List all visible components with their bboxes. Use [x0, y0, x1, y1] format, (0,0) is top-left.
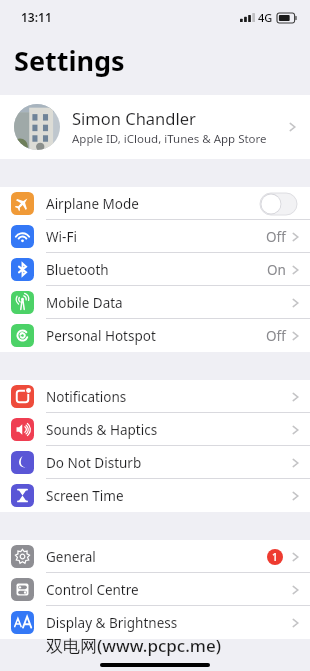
- staticText: Sounds & Haptics: [46, 421, 292, 439]
- staticText: Personal Hotspot: [46, 327, 266, 345]
- staticText: Screen Time: [46, 487, 292, 505]
- staticText: Apple ID, iCloud, iTunes & App Store: [72, 131, 267, 147]
- staticText: 4G: [258, 10, 273, 25]
- staticText: General: [46, 548, 267, 566]
- staticText: Wi-Fi: [46, 228, 266, 246]
- staticText: Mobile Data: [46, 294, 292, 312]
- button[interactable]: Airplane Mode: [0, 187, 310, 220]
- button[interactable]: Mobile Data: [0, 286, 310, 319]
- staticText: Settings: [14, 42, 125, 79]
- button[interactable]: Simon Chandler: [0, 95, 310, 159]
- staticText: 1: [272, 550, 278, 564]
- button[interactable]: Personal Hotspot: [0, 319, 310, 352]
- button[interactable]: Sounds & Haptics: [0, 413, 310, 446]
- staticText: Bluetooth: [46, 261, 267, 279]
- staticText: Do Not Disturb: [46, 454, 292, 472]
- staticText: On: [267, 261, 286, 279]
- staticText: 13:11: [21, 9, 52, 25]
- button[interactable]: Notifications: [0, 380, 310, 413]
- staticText: Display & Brightness: [46, 614, 292, 632]
- button[interactable]: Screen Time: [0, 479, 310, 512]
- staticText: Control Centre: [46, 581, 292, 599]
- staticText: Notifications: [46, 388, 292, 406]
- button[interactable]: Wi-Fi: [0, 220, 310, 253]
- staticText: Off: [266, 228, 286, 246]
- button[interactable]: Do Not Disturb: [0, 446, 310, 479]
- staticText: 双电网(www.pcpc.me): [46, 634, 221, 657]
- button[interactable]: General: [0, 540, 310, 573]
- staticText: Airplane Mode: [46, 195, 260, 213]
- button[interactable]: Display & Brightness: [0, 606, 310, 639]
- staticText: Simon Chandler: [72, 107, 196, 129]
- staticText: Off: [266, 327, 286, 345]
- button[interactable]: Bluetooth: [0, 253, 310, 286]
- button[interactable]: Control Centre: [0, 573, 310, 606]
